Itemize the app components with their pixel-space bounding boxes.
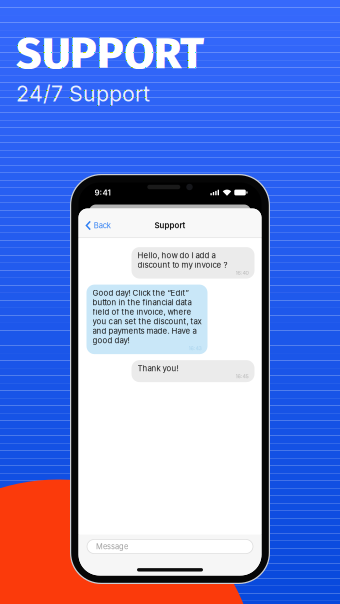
staticText: Hello, how do I add a discount to my inv… — [137, 251, 227, 270]
button[interactable]: Message — [87, 539, 253, 553]
button[interactable]: Back — [78, 215, 119, 236]
staticText: Message — [96, 542, 128, 551]
staticText: Support — [154, 221, 185, 230]
staticText: Good day! Click the “Edit” button in the… — [92, 288, 201, 345]
staticText: 16:43 — [188, 345, 201, 352]
staticText: 16:40 — [235, 270, 248, 276]
staticText: SUPPORT — [16, 27, 204, 80]
staticText: 9:41 — [94, 188, 110, 197]
staticText: Thank you! — [137, 364, 178, 373]
staticText: 24/7 Support — [16, 81, 150, 107]
staticText: 16:45 — [235, 373, 248, 380]
staticText: Back — [94, 221, 111, 230]
